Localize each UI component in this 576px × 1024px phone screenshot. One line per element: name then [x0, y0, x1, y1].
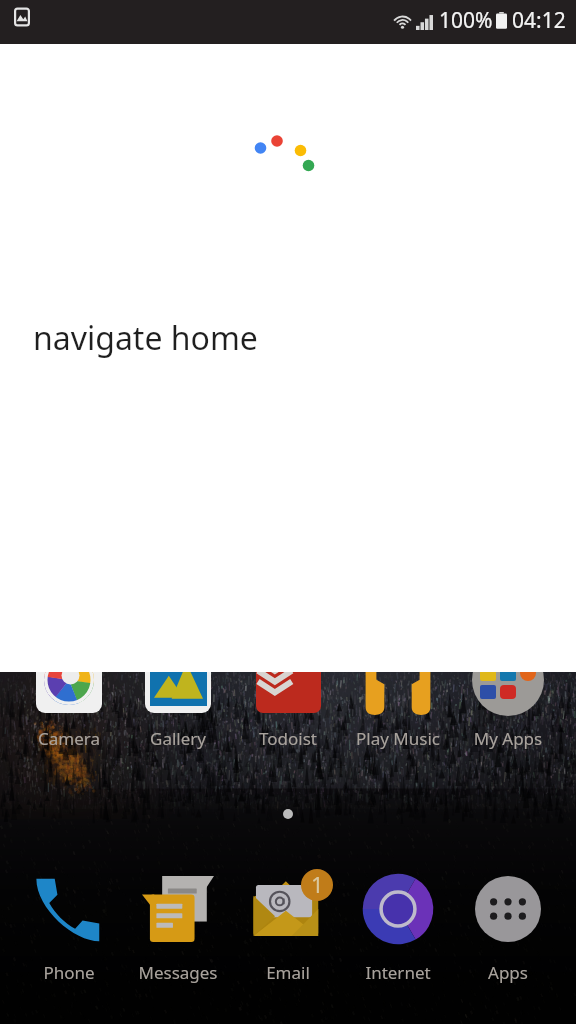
- button[interactable]: Internet: [346, 869, 450, 988]
- button[interactable]: Apps: [456, 869, 560, 988]
- button[interactable]: Todoist: [236, 640, 340, 754]
- staticText: Internet: [346, 961, 450, 984]
- staticText: Gallery: [126, 727, 230, 750]
- button[interactable]: Camera: [17, 640, 121, 754]
- button[interactable]: Messages: [126, 869, 230, 988]
- button[interactable]: Gallery: [126, 640, 230, 754]
- staticText: Apps: [456, 961, 560, 984]
- button[interactable]: Screenshot: [5, 0, 39, 34]
- staticText: Messages: [126, 961, 230, 984]
- staticText: Phone: [17, 961, 121, 984]
- staticText: 04:12: [512, 6, 566, 35]
- staticText: 100%: [439, 6, 493, 35]
- staticText: Play Music: [346, 727, 450, 750]
- button[interactable]: Phone: [17, 869, 121, 988]
- button[interactable]: Play Music: [346, 640, 450, 754]
- staticText: 1: [311, 869, 324, 899]
- button[interactable]: My Apps: [456, 640, 560, 754]
- staticText: My Apps: [456, 727, 560, 750]
- staticText: Todoist: [236, 727, 340, 750]
- button[interactable]: 1: [236, 869, 340, 988]
- staticText: Email: [236, 961, 340, 984]
- staticText: navigate home: [33, 316, 258, 360]
- staticText: Camera: [17, 727, 121, 750]
